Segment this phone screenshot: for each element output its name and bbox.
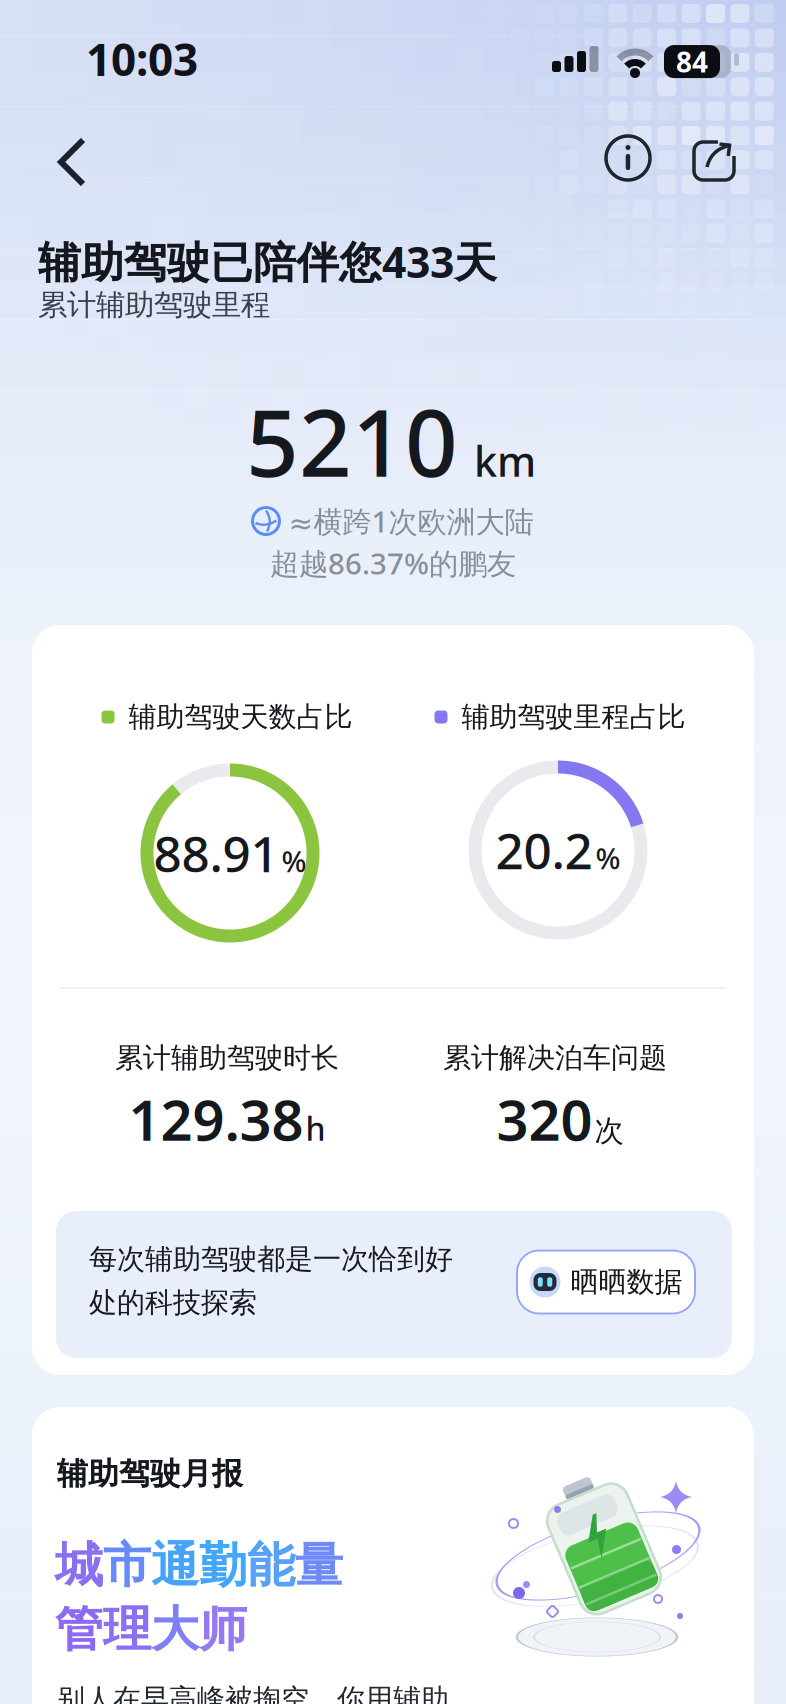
staticText: 城: [55, 1536, 103, 1595]
staticText: 84: [676, 43, 708, 80]
staticText: 大: [151, 1600, 199, 1659]
staticText: 累计辅助驾驶里程: [38, 287, 270, 323]
staticText: ≈横跨1次欧洲大陆: [288, 501, 533, 540]
staticText: 师: [199, 1600, 247, 1659]
staticText: km: [474, 433, 536, 488]
staticText: 超越86.37%的鹏友: [270, 543, 516, 582]
staticText: 量: [295, 1536, 343, 1595]
button[interactable]: Info: [606, 136, 650, 180]
staticText: 10:03: [86, 30, 198, 88]
staticText: 5210: [246, 380, 458, 502]
staticText: %: [281, 841, 306, 880]
staticText: 每次辅助驾驶都是一次恰到好: [89, 1242, 453, 1276]
staticText: 次: [594, 1113, 623, 1149]
staticText: 320: [496, 1082, 592, 1156]
button[interactable]: Share: [694, 140, 736, 182]
staticText: 通: [151, 1536, 199, 1595]
staticText: 辅助驾驶里程占比: [461, 700, 685, 734]
staticText: 晒晒数据: [570, 1265, 682, 1299]
button[interactable]: Back: [53, 134, 93, 190]
staticText: %: [595, 838, 620, 877]
staticText: 市: [103, 1536, 151, 1595]
button[interactable]: 辅助驾驶月报: [32, 1407, 754, 1704]
staticText: 辅助驾驶月报: [57, 1455, 243, 1493]
staticText: h: [305, 1107, 325, 1150]
staticText: 辅助驾驶天数占比: [128, 700, 352, 734]
staticText: 129.38: [128, 1082, 303, 1156]
staticText: 别人在早高峰被掏空，你用辅助: [57, 1682, 449, 1704]
staticText: 勤: [199, 1536, 247, 1595]
staticText: 管: [55, 1600, 103, 1659]
staticText: 能: [247, 1536, 295, 1595]
staticText: 20.2: [495, 817, 592, 883]
staticText: 理: [103, 1600, 151, 1659]
staticText: 88.91: [153, 820, 278, 886]
staticText: 辅助驾驶已陪伴您433天: [38, 233, 497, 290]
staticText: 累计解决泊车问题: [443, 1041, 667, 1075]
staticText: 累计辅助驾驶时长: [115, 1041, 339, 1075]
button[interactable]: 晒晒数据: [516, 1249, 696, 1314]
staticText: 处的科技探索: [89, 1285, 257, 1320]
